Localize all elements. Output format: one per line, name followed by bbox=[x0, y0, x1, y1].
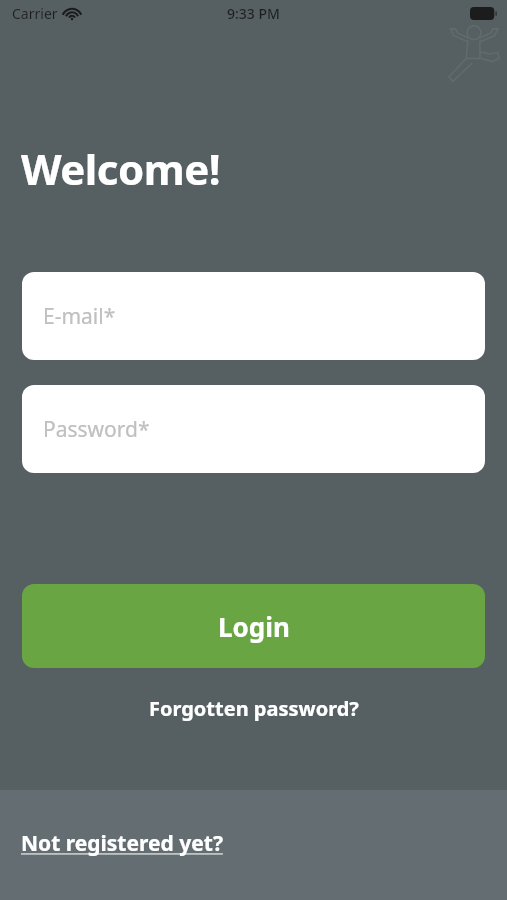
staticText: Welcome! bbox=[21, 140, 221, 197]
button[interactable]: Login bbox=[22, 584, 485, 668]
staticText: Password* bbox=[43, 415, 150, 444]
staticText: 9:33 PM bbox=[227, 4, 280, 23]
staticText: Login bbox=[218, 609, 290, 644]
button[interactable]: Forgotten password? bbox=[0, 690, 507, 726]
staticText: Carrier bbox=[12, 4, 58, 23]
staticText: Not registered yet? bbox=[21, 829, 223, 858]
button[interactable]: E-mail* bbox=[22, 272, 485, 360]
button[interactable]: Not registered yet? bbox=[20, 825, 224, 862]
staticText: E-mail* bbox=[43, 302, 116, 331]
button[interactable]: Password* bbox=[22, 385, 485, 473]
staticText: Forgotten password? bbox=[149, 695, 359, 722]
